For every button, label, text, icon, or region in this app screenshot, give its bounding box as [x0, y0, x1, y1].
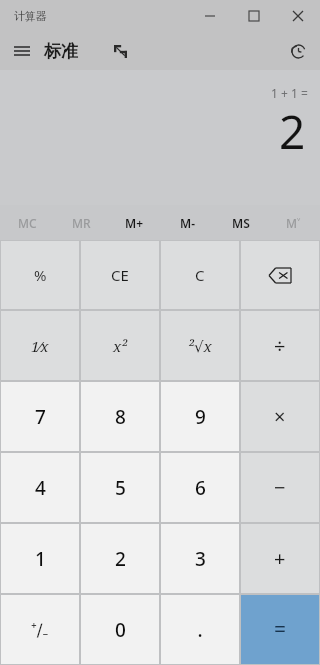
staticText: M+: [125, 215, 144, 231]
button[interactable]: 3: [161, 524, 239, 593]
button[interactable]: 2: [81, 524, 159, 593]
staticText: %: [34, 265, 47, 285]
staticText: 0: [115, 617, 126, 643]
button[interactable]: ÷: [241, 311, 319, 380]
staticText: 1 + 1 =: [271, 85, 308, 101]
staticText: MC: [18, 215, 37, 231]
button[interactable]: 4: [1, 453, 79, 522]
staticText: −: [274, 474, 286, 501]
button[interactable]: Menu: [6, 35, 38, 67]
button[interactable]: 1: [1, 524, 79, 593]
staticText: +: [274, 545, 286, 572]
button[interactable]: M+: [108, 205, 161, 240]
button[interactable]: 7: [1, 382, 79, 451]
staticText: 1⁄x: [31, 336, 49, 356]
button[interactable]: MR: [54, 205, 108, 240]
staticText: =: [274, 615, 287, 644]
button[interactable]: CE: [81, 241, 159, 309]
staticText: 3: [195, 546, 206, 572]
staticText: ÷: [274, 332, 286, 359]
button[interactable]: 6: [161, 453, 239, 522]
staticText: ²√x: [188, 336, 212, 356]
button[interactable]: −: [241, 453, 319, 522]
staticText: 9: [195, 404, 206, 430]
staticText: 8: [115, 404, 126, 430]
staticText: M˅: [286, 215, 301, 231]
staticText: 6: [195, 475, 206, 501]
button[interactable]: ×: [241, 382, 319, 451]
staticText: 7: [35, 404, 46, 430]
staticText: ⁺∕₋: [31, 618, 49, 641]
button[interactable]: C: [161, 241, 239, 309]
staticText: 2: [115, 546, 126, 572]
button[interactable]: History: [282, 35, 314, 67]
button[interactable]: MC: [0, 205, 54, 240]
button[interactable]: Minimize: [188, 0, 232, 32]
button[interactable]: Keep on top: [106, 37, 134, 65]
staticText: 2: [279, 100, 306, 163]
button[interactable]: ²√x: [161, 311, 239, 380]
button[interactable]: 8: [81, 382, 159, 451]
button[interactable]: Maximize: [232, 0, 276, 32]
button[interactable]: %: [1, 241, 79, 309]
button[interactable]: M˅: [267, 205, 320, 240]
staticText: 5: [115, 475, 126, 501]
staticText: 4: [35, 475, 46, 501]
staticText: 标准: [44, 41, 78, 62]
staticText: M-: [180, 215, 195, 231]
button[interactable]: ⁺∕₋: [1, 595, 79, 664]
button[interactable]: x²: [81, 311, 159, 380]
button[interactable]: MS: [214, 205, 267, 240]
other: Backspace: [269, 268, 291, 283]
staticText: ×: [274, 403, 286, 430]
button[interactable]: 9: [161, 382, 239, 451]
button[interactable]: 1⁄x: [1, 311, 79, 380]
button[interactable]: M-: [161, 205, 214, 240]
staticText: MR: [72, 215, 91, 231]
staticText: C: [195, 265, 205, 285]
button[interactable]: 5: [81, 453, 159, 522]
button[interactable]: Close: [276, 0, 320, 32]
staticText: 1: [35, 546, 46, 572]
staticText: .: [197, 617, 203, 643]
staticText: MS: [232, 215, 250, 231]
staticText: x²: [113, 336, 128, 356]
staticText: 计算器: [14, 9, 47, 23]
button[interactable]: .: [161, 595, 239, 664]
button[interactable]: Backspace: [241, 241, 319, 309]
button[interactable]: Equals: [241, 595, 319, 664]
staticText: CE: [111, 265, 129, 285]
button[interactable]: +: [241, 524, 319, 593]
button[interactable]: 0: [81, 595, 159, 664]
